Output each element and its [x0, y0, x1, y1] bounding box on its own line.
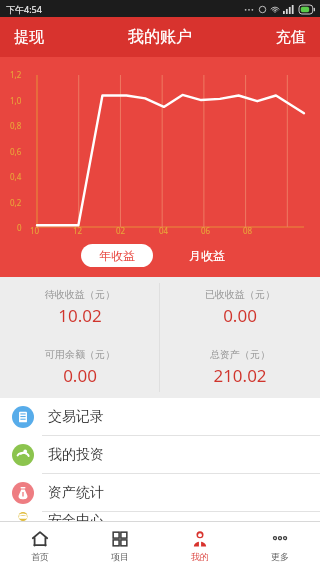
staticText: 已收收益（元）	[205, 288, 275, 301]
staticText: 资产统计	[48, 484, 104, 502]
staticText: 0,8	[10, 120, 22, 131]
button[interactable]: 总资产（元）	[160, 337, 320, 398]
staticText: 提现	[14, 28, 44, 47]
staticText: 月收益	[189, 248, 225, 263]
button[interactable]: 已收收益（元）	[160, 277, 320, 337]
button[interactable]: 项目	[80, 522, 160, 569]
staticText: 0	[17, 222, 22, 233]
staticText: 项目	[111, 551, 129, 562]
staticText: 10.02	[58, 304, 102, 327]
staticText: 08	[243, 225, 253, 236]
staticText: 我的账户	[128, 27, 192, 47]
staticText: 可用余额（元）	[45, 348, 115, 361]
staticText: 06	[201, 225, 211, 236]
staticText: 0,4	[10, 171, 22, 182]
button[interactable]: 资产统计	[0, 474, 320, 511]
staticText: 210.02	[213, 364, 267, 387]
staticText: 首页	[31, 551, 49, 562]
staticText: 下午4:54	[6, 3, 42, 15]
button[interactable]: 更多	[240, 522, 320, 569]
staticText: 1,0	[10, 95, 22, 106]
staticText: 我的投资	[48, 446, 104, 464]
staticText: 安全中心	[48, 512, 104, 521]
button[interactable]: 提现	[0, 17, 58, 57]
staticText: 总资产（元）	[210, 348, 270, 361]
button[interactable]: 交易记录	[0, 398, 320, 435]
button[interactable]: 我的投资	[0, 436, 320, 473]
staticText: 02	[116, 225, 126, 236]
staticText: 0,6	[10, 146, 22, 157]
staticText: 0,2	[10, 197, 22, 208]
staticText: 12	[73, 225, 83, 236]
staticText: 更多	[271, 551, 289, 562]
button[interactable]: 月收益	[175, 244, 239, 267]
staticText: 年收益	[99, 248, 135, 263]
staticText: 0.00	[223, 304, 257, 327]
staticText: 交易记录	[48, 408, 104, 426]
button[interactable]: 年收益	[81, 244, 153, 267]
button[interactable]: 我的	[160, 522, 240, 569]
button[interactable]: 首页	[0, 522, 80, 569]
button[interactable]: 待收收益（元）	[0, 277, 159, 337]
staticText: 我的	[191, 551, 209, 562]
staticText: 待收收益（元）	[45, 288, 115, 301]
staticText: 10	[30, 225, 40, 236]
staticText: 04	[159, 225, 169, 236]
staticText: 1,2	[10, 69, 22, 80]
button[interactable]: 安全中心	[0, 512, 320, 521]
button[interactable]: 可用余额（元）	[0, 337, 159, 398]
staticText: 充值	[276, 28, 306, 47]
button[interactable]: 充值	[262, 17, 320, 57]
staticText: 0.00	[63, 364, 97, 387]
